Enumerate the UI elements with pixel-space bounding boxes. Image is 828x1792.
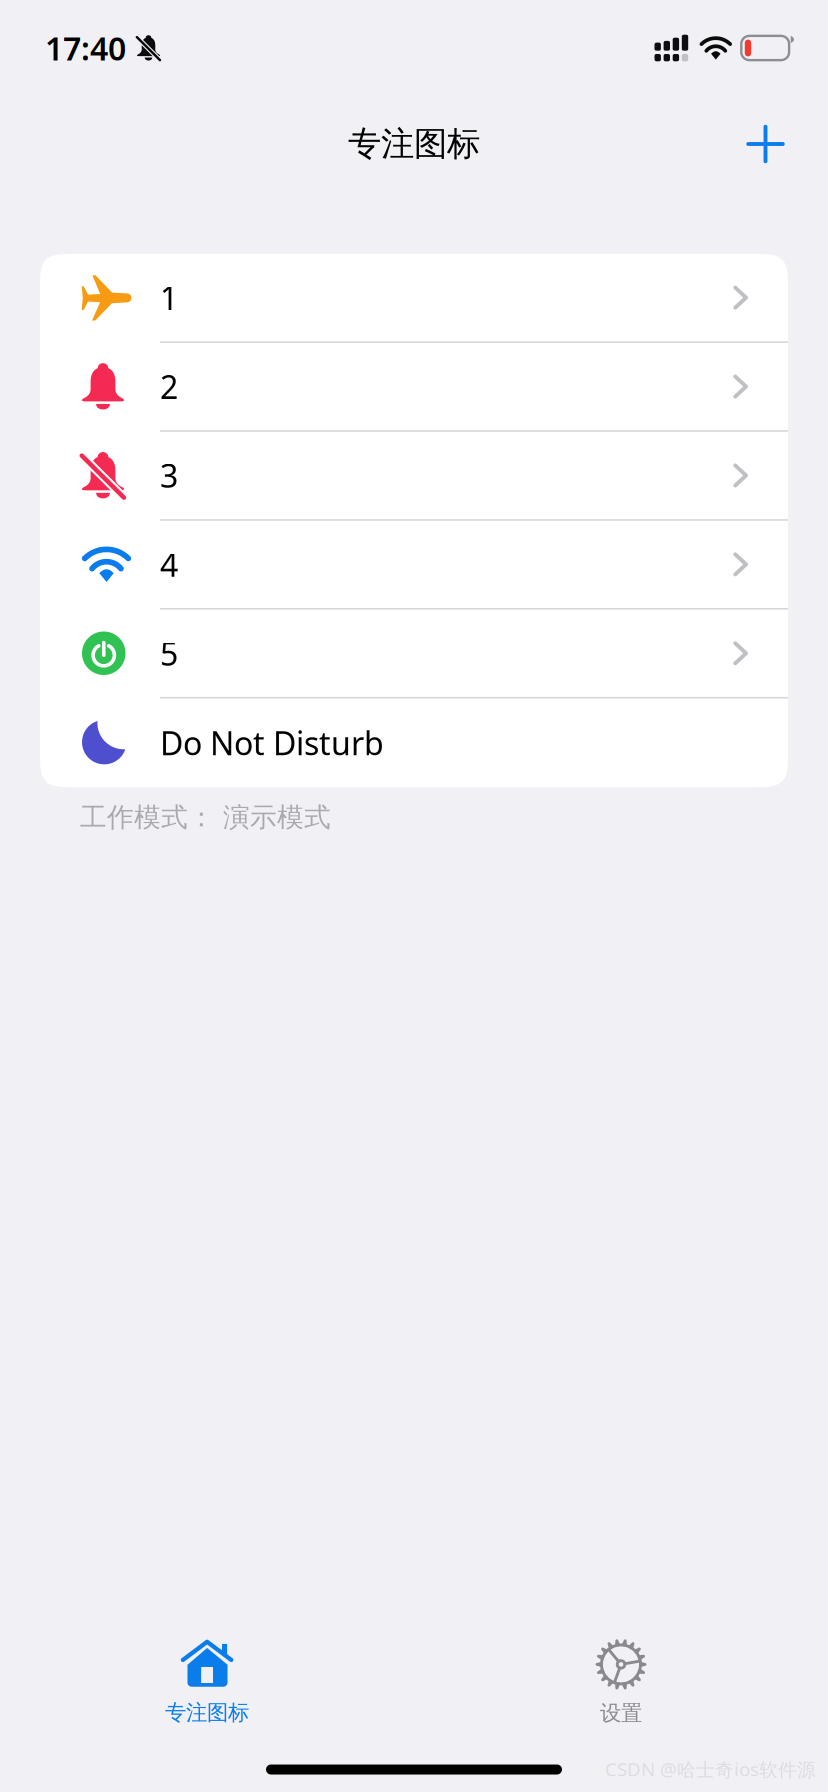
button[interactable]: 设置 bbox=[414, 1634, 828, 1730]
staticText: 专注图标 bbox=[165, 1700, 249, 1726]
button[interactable]: 2 bbox=[40, 343, 788, 430]
button[interactable]: 5 bbox=[40, 610, 788, 697]
staticText: 4 bbox=[160, 543, 178, 586]
staticText: 1 bbox=[160, 276, 178, 319]
button[interactable]: 1 bbox=[40, 254, 788, 341]
staticText: 17:40 bbox=[45, 27, 126, 69]
staticText: Do Not Disturb bbox=[160, 722, 384, 764]
button[interactable]: Add bbox=[729, 108, 801, 180]
button[interactable]: 4 bbox=[40, 521, 788, 608]
staticText: 专注图标 bbox=[348, 123, 480, 164]
staticText: CSDN @哈士奇ios软件源 bbox=[605, 1757, 816, 1781]
button[interactable]: Do Not Disturb bbox=[40, 698, 788, 787]
staticText: 工作模式： 演示模式 bbox=[80, 801, 331, 834]
staticText: 5 bbox=[160, 632, 178, 674]
staticText: 2 bbox=[160, 365, 178, 408]
button[interactable]: 3 bbox=[40, 432, 788, 519]
button[interactable]: 专注图标 bbox=[0, 1634, 414, 1730]
staticText: 3 bbox=[160, 454, 178, 497]
staticText: 设置 bbox=[600, 1700, 642, 1726]
